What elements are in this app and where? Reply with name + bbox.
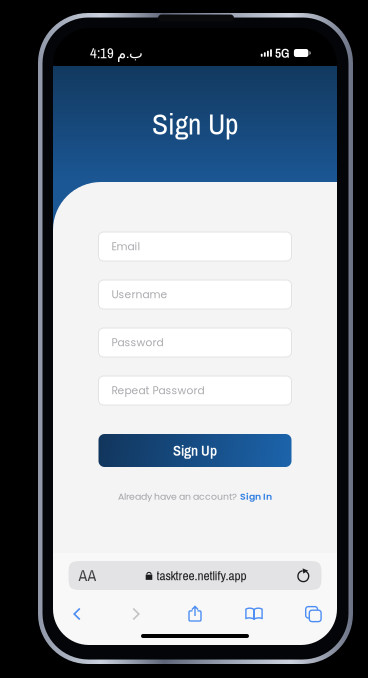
staticText: Repeat Password: [111, 383, 204, 398]
button[interactable]: Sign Up: [98, 434, 291, 467]
button[interactable]: AA: [68, 561, 106, 590]
staticText: Sign Up: [152, 104, 238, 144]
button[interactable]: Back: [54, 601, 100, 627]
staticText: Sign Up: [173, 441, 217, 460]
button[interactable]: Reload: [285, 561, 321, 590]
staticText: Already have an account?: [118, 490, 237, 503]
button[interactable]: Email: [98, 232, 291, 261]
staticText: 5G: [275, 44, 290, 62]
button[interactable]: Repeat Password: [98, 376, 291, 405]
button[interactable]: Bookmarks: [231, 601, 277, 627]
button[interactable]: Forward: [113, 601, 159, 627]
staticText: Sign In: [240, 490, 272, 503]
button[interactable]: Already have an account?: [118, 490, 272, 503]
button[interactable]: Share: [172, 601, 218, 627]
staticText: ‭4:19 م.ب‬: [90, 43, 143, 63]
button[interactable]: Username: [98, 280, 291, 309]
staticText: AA: [78, 565, 96, 586]
button[interactable]: Password: [98, 328, 291, 357]
staticText: Password: [111, 335, 163, 350]
staticText: Username: [111, 287, 167, 302]
button[interactable]: Tabs: [290, 601, 336, 627]
staticText: Email: [111, 239, 140, 254]
staticText: tasktree.netlify.app: [157, 566, 247, 584]
